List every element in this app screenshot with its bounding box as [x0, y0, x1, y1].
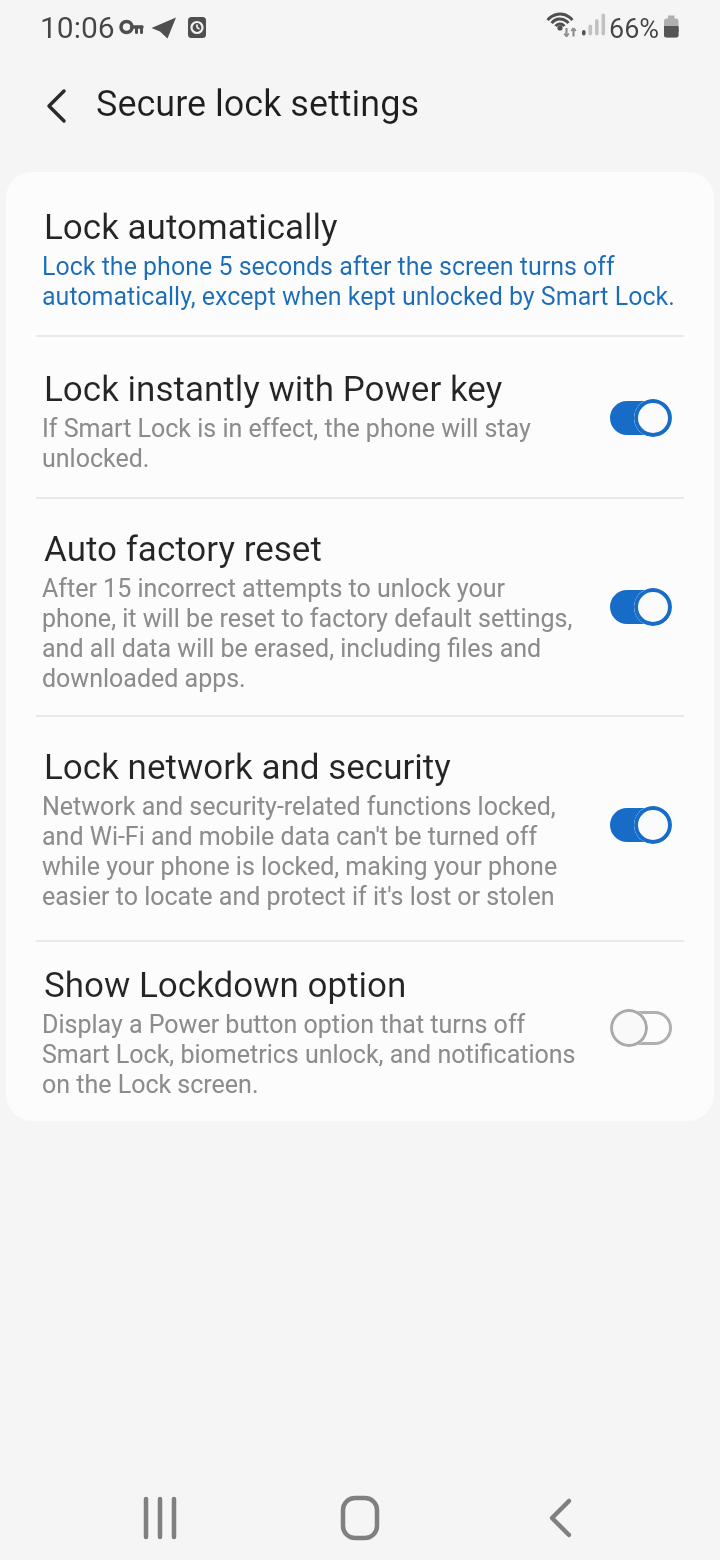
button[interactable] — [610, 1009, 672, 1047]
staticText: Secure lock settings — [96, 83, 419, 125]
button[interactable] — [610, 806, 672, 844]
button[interactable] — [6, 720, 714, 934]
button[interactable] — [6, 180, 714, 330]
button[interactable] — [6, 502, 714, 710]
button[interactable] — [610, 399, 672, 437]
staticText: Auto factory reset — [44, 529, 322, 570]
button[interactable] — [6, 944, 714, 1119]
button[interactable] — [110, 1468, 210, 1560]
staticText: Lock the phone 5 seconds after the scree… — [42, 252, 675, 311]
staticText: Network and security-related functions l… — [42, 792, 558, 911]
button[interactable] — [30, 80, 82, 132]
staticText: Lock automatically — [44, 207, 338, 248]
button[interactable] — [6, 340, 714, 492]
button[interactable] — [510, 1468, 610, 1560]
staticText: After 15 incorrect attempts to unlock yo… — [42, 574, 573, 693]
button[interactable] — [610, 588, 672, 626]
staticText: 10:06 — [40, 10, 115, 45]
button[interactable] — [310, 1468, 410, 1560]
staticText: 66% — [609, 13, 660, 45]
staticText: Show Lockdown option — [44, 965, 407, 1006]
staticText: Lock instantly with Power key — [44, 369, 503, 410]
staticText: If Smart Lock is in effect, the phone wi… — [42, 414, 531, 473]
staticText: Lock network and security — [44, 747, 451, 788]
staticText: Display a Power button option that turns… — [42, 1010, 576, 1099]
